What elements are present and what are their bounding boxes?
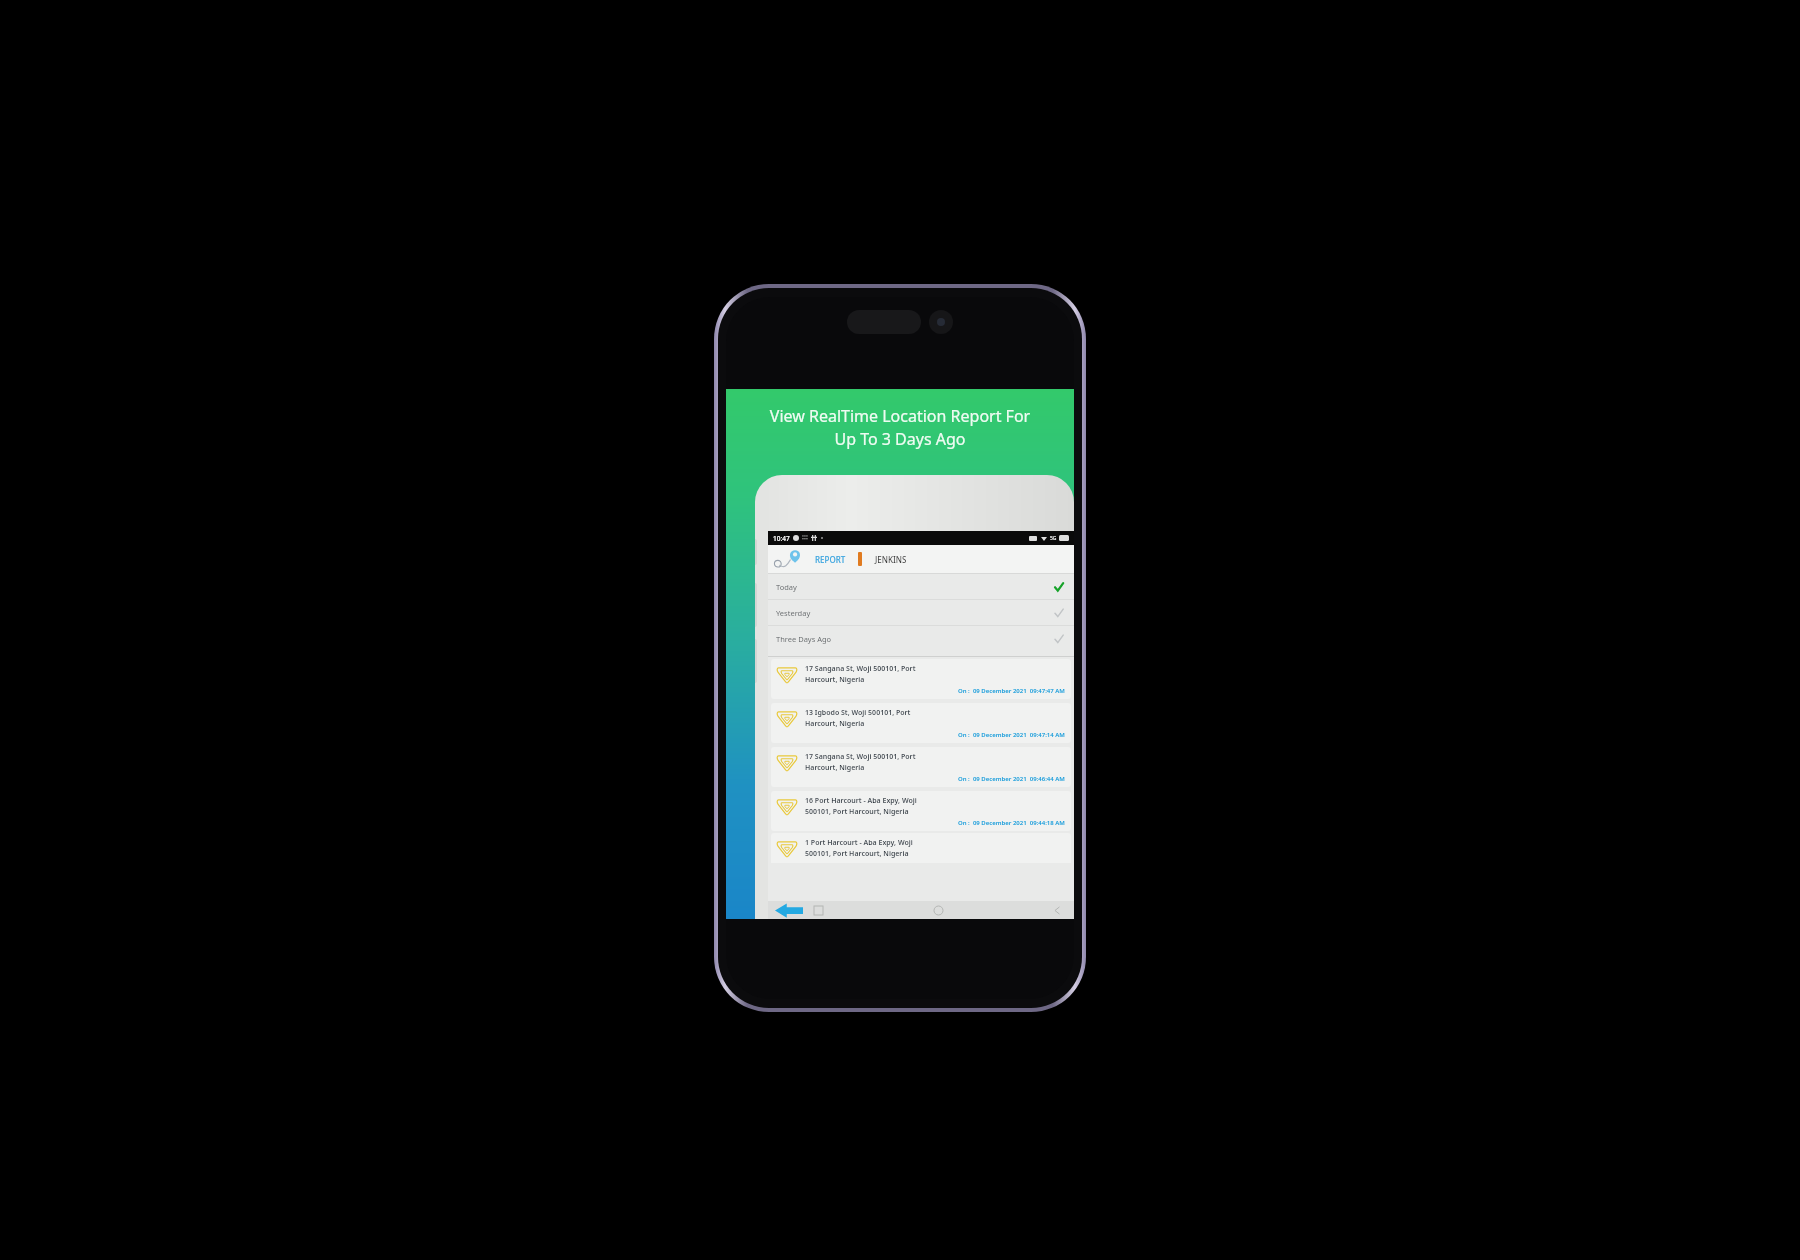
other: Not selected — [1054, 607, 1064, 619]
button[interactable]: 13 Igbodo St, Woji 500101, Port — [771, 703, 1071, 743]
button[interactable]: 17 Sangana St, Woji 500101, Port — [771, 747, 1071, 787]
other: Not selected — [1054, 633, 1064, 645]
button[interactable]: Back — [775, 903, 803, 918]
button[interactable]: JENKINS — [872, 549, 910, 570]
staticText: 16 Port Harcourt - Aba Expy, Woji — [805, 796, 917, 806]
button[interactable]: REPORT — [812, 549, 849, 570]
staticText: 17 Sangana St, Woji 500101, Port — [805, 664, 916, 674]
staticText: On : 09 December 2021 09:46:44 AM — [958, 775, 1065, 783]
staticText: 500101, Port Harcourt, Nigeria — [805, 849, 909, 859]
staticText: Three Days Ago — [776, 634, 832, 644]
staticText: Harcourt, Nigeria — [805, 763, 865, 773]
staticText: JENKINS — [875, 554, 907, 565]
staticText: REPORT — [815, 554, 846, 565]
button[interactable]: 1 Port Harcourt - Aba Expy, Woji — [771, 833, 1071, 863]
staticText: 5G — [1050, 535, 1057, 542]
staticText: Harcourt, Nigeria — [805, 719, 865, 729]
staticText: On : 09 December 2021 09:44:18 AM — [958, 819, 1065, 827]
button[interactable]: 17 Sangana St, Woji 500101, Port — [771, 659, 1071, 699]
staticText: View RealTime Location Report For Up To … — [732, 405, 1068, 450]
staticText: On : 09 December 2021 09:47:14 AM — [958, 731, 1065, 739]
staticText: On : 09 December 2021 09:47:47 AM — [958, 687, 1065, 695]
staticText: 500101, Port Harcourt, Nigeria — [805, 807, 909, 817]
button[interactable]: 16 Port Harcourt - Aba Expy, Woji — [771, 791, 1071, 831]
button[interactable]: Home — [934, 906, 943, 915]
other: Selected — [1054, 581, 1064, 593]
button[interactable]: Recents — [814, 906, 823, 915]
button[interactable]: Today — [768, 574, 1074, 599]
staticText: Yesterday — [776, 608, 811, 618]
staticText: 13 Igbodo St, Woji 500101, Port — [805, 708, 911, 718]
button[interactable]: Back — [1053, 906, 1062, 915]
staticText: Harcourt, Nigeria — [805, 675, 865, 685]
staticText: 17 Sangana St, Woji 500101, Port — [805, 752, 916, 762]
staticText: 1 Port Harcourt - Aba Expy, Woji — [805, 838, 913, 848]
button[interactable]: Three Days Ago — [768, 626, 1074, 651]
staticText: 10:47 — [773, 534, 790, 543]
button[interactable]: Yesterday — [768, 600, 1074, 625]
staticText: Today — [776, 582, 797, 592]
